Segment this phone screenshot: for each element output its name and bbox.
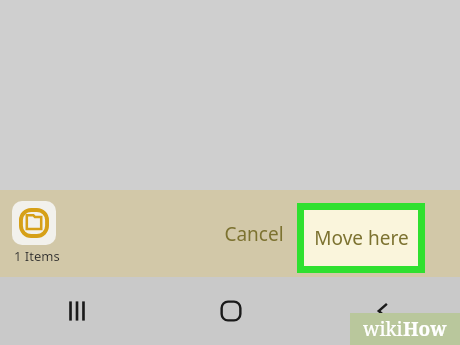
button[interactable]: Cancel (208, 204, 300, 264)
button[interactable]: Folder (12, 201, 60, 265)
staticText: 1 Items (14, 247, 60, 265)
button[interactable]: Back (307, 277, 460, 345)
button[interactable]: Home (154, 277, 307, 345)
staticText: Move here (314, 225, 409, 251)
button[interactable]: Recent apps (0, 277, 154, 345)
staticText: How (403, 316, 447, 342)
staticText: Cancel (224, 221, 284, 247)
staticText: wiki (363, 316, 403, 342)
button[interactable]: Move here (304, 210, 418, 266)
other: Folder (12, 201, 56, 245)
